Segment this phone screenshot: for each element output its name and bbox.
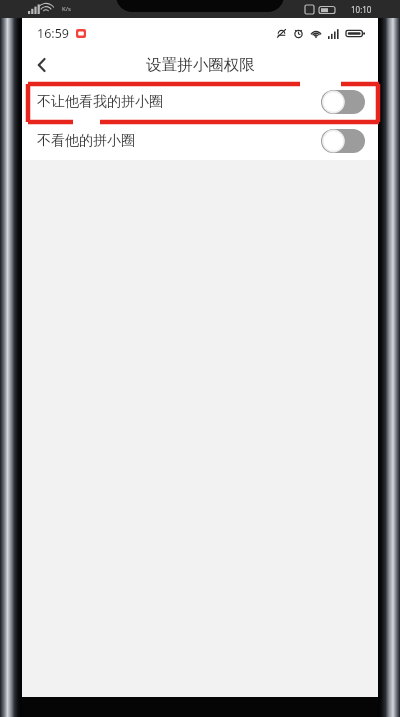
staticText: 不让他看我的拼小圈: [37, 93, 163, 111]
button[interactable]: 不让他看我的拼小圈: [22, 82, 378, 121]
button[interactable]: 开关: [321, 90, 365, 114]
button[interactable]: 返回: [22, 48, 62, 82]
staticText: 10:10: [351, 4, 372, 15]
button[interactable]: 开关: [321, 129, 365, 153]
button[interactable]: 不看他的拼小圈: [22, 121, 378, 160]
staticText: 设置拼小圈权限: [146, 55, 255, 75]
staticText: 不看他的拼小圈: [37, 132, 135, 150]
staticText: 16:59: [37, 25, 69, 42]
staticText: K/s: [62, 5, 71, 13]
